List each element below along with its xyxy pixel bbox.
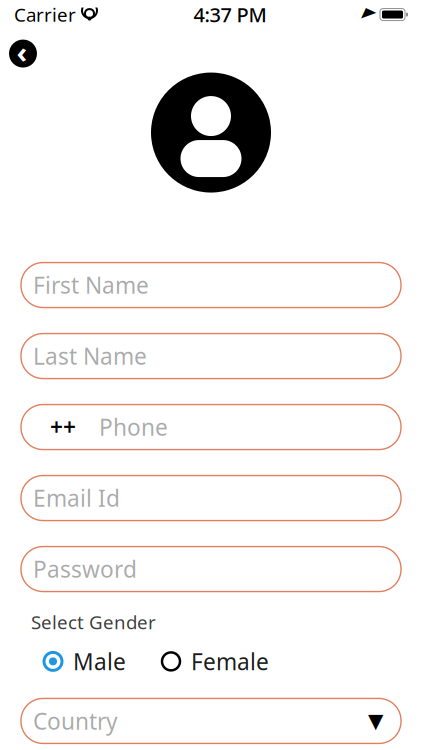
button[interactable]: ++ (21, 405, 401, 450)
staticText: Country (33, 706, 118, 736)
staticText: Email Id (33, 483, 120, 513)
button[interactable]: Country (21, 698, 401, 743)
staticText: ◤ (363, 6, 374, 23)
button[interactable]: Male (42, 646, 126, 676)
button[interactable]: Password (21, 547, 401, 592)
staticText: Phone (99, 412, 168, 442)
staticText: Select Gender (31, 610, 156, 634)
button[interactable]: Email Id (21, 476, 401, 521)
button[interactable]: First Name (21, 263, 401, 308)
button[interactable]: Back (7, 38, 39, 70)
staticText: ++ (50, 412, 76, 442)
button[interactable]: Female (160, 646, 269, 676)
staticText: ‹ (16, 32, 27, 71)
button[interactable]: Last Name (21, 334, 401, 379)
staticText: Female (191, 646, 269, 676)
staticText: ▼ (368, 710, 383, 732)
staticText: Carrier (14, 2, 76, 27)
staticText: Last Name (33, 341, 147, 371)
staticText: Password (33, 554, 137, 584)
staticText: Male (73, 646, 126, 676)
staticText: First Name (33, 270, 149, 300)
staticText: 4:37 PM (193, 1, 266, 28)
